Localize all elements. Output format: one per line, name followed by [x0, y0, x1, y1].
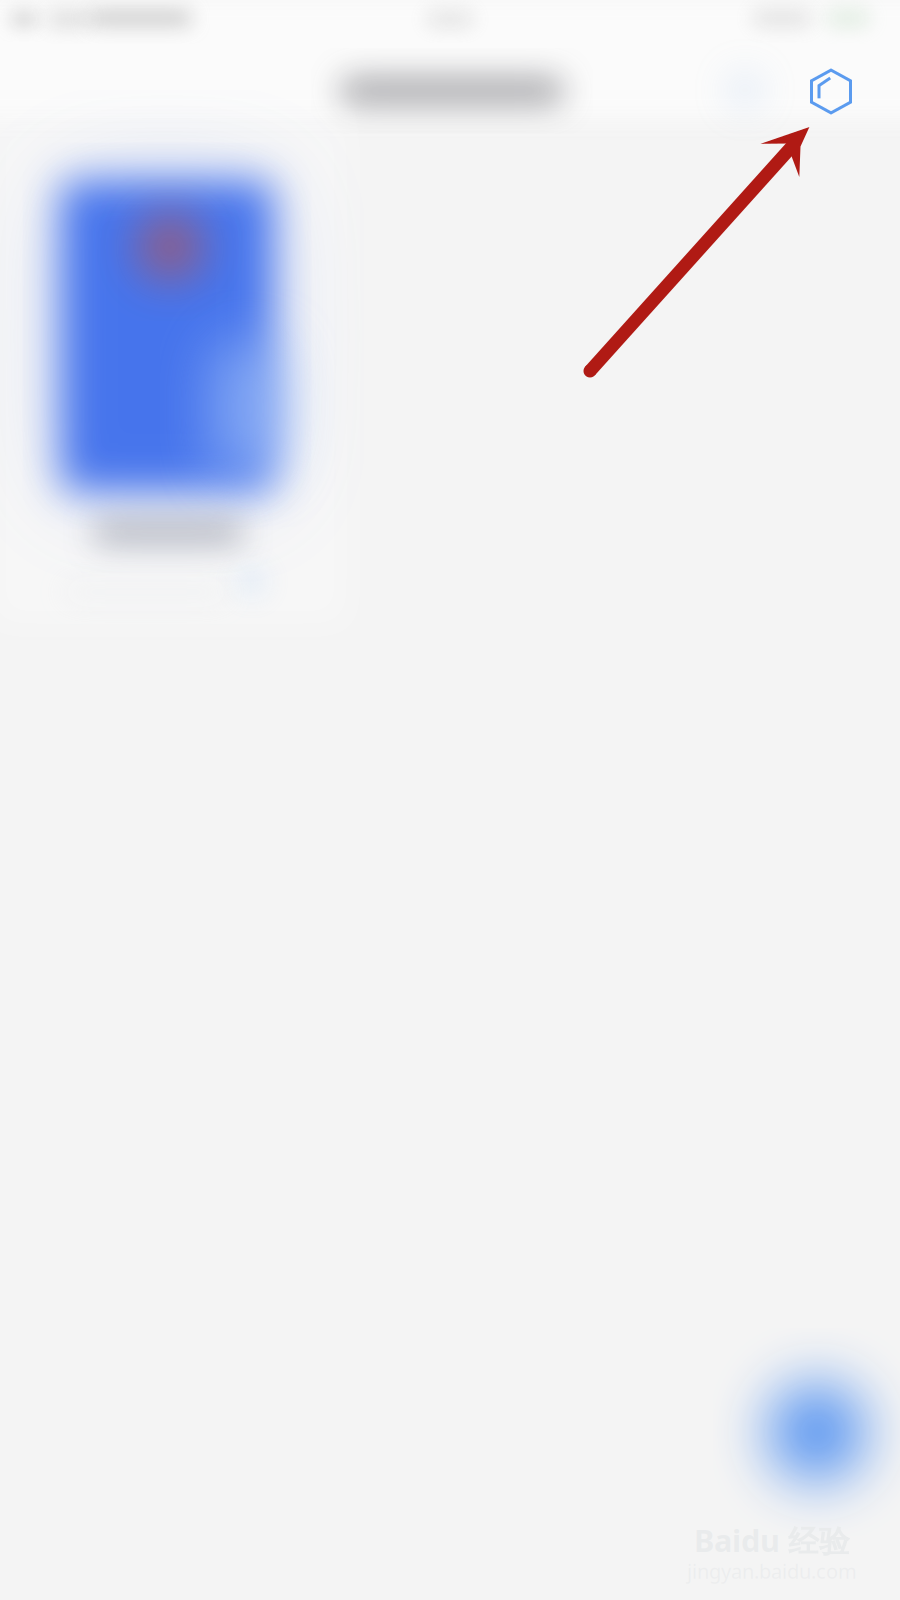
staticText: Baidu 经验: [694, 1520, 850, 1561]
button[interactable]: Create: [787, 47, 875, 135]
